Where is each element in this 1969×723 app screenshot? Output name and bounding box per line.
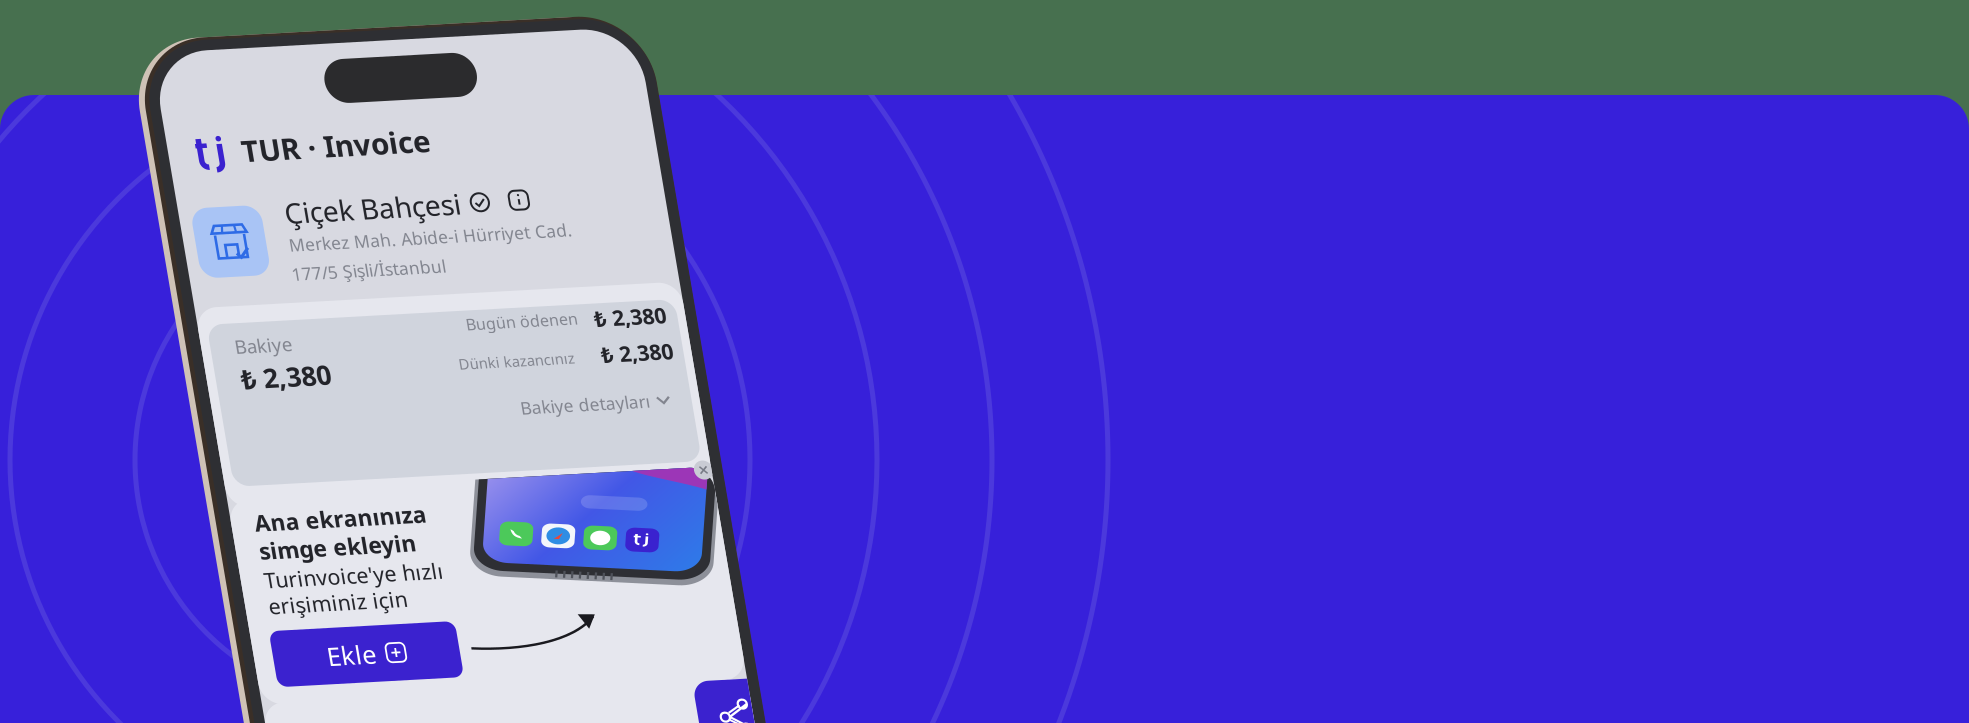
button[interactable]: Ekle [168,633,354,689]
button[interactable]: Bakiye detayları [455,414,605,437]
staticText: ₺ 2,380 [543,327,615,355]
staticText: simge ekleyin [172,538,329,568]
button[interactable]: Kapat [615,486,637,508]
staticText: ₺ 2,380 [544,363,616,391]
staticText: Bugün ödenen [415,329,527,350]
staticText: Ana ekranınıza [172,510,344,540]
staticText: erişiminiz için [172,594,311,622]
staticText: 177/5 Şişli/İstanbul [251,269,405,292]
staticText: TUR · Invoice [222,136,411,175]
staticText: Çiçek Bahçesi [254,201,430,238]
staticText: Ekle [221,644,270,678]
staticText: Merkez Mah. Abide-i Hürriyet Cad. [253,240,536,263]
staticText: Turinvoice'ye hızlı [172,568,351,596]
staticText: ₺ 2,380 [183,364,273,399]
staticText: Bakiye [182,337,240,362]
staticText: Bakiye detayları [455,414,584,437]
